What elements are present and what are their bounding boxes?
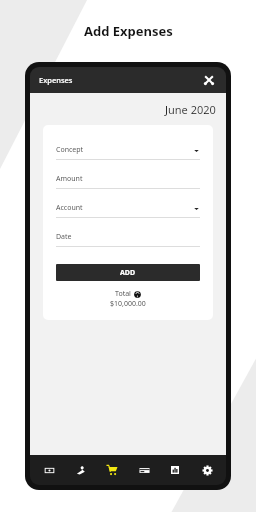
button[interactable]: Date [56, 228, 200, 257]
button[interactable]: Reports [163, 458, 187, 482]
staticText: ADD [120, 268, 136, 278]
button[interactable]: Concept [56, 141, 200, 170]
staticText: Expenses [39, 75, 73, 85]
button[interactable]: Cash [37, 458, 61, 482]
staticText: Amount [56, 174, 83, 184]
button[interactable]: Expenses [100, 458, 124, 482]
button[interactable]: Cards [132, 458, 156, 482]
button[interactable]: Income [69, 458, 93, 482]
button[interactable]: Tools [201, 72, 217, 88]
staticText: $10,000.00 [110, 299, 146, 309]
staticText: Date [56, 232, 72, 242]
staticText: June 2020 [165, 102, 216, 117]
button[interactable]: Help [133, 290, 141, 298]
button[interactable]: ADD [56, 264, 200, 281]
button[interactable]: Account [56, 199, 200, 228]
staticText: Add Expenses [84, 22, 173, 40]
button[interactable]: Settings [195, 458, 219, 482]
staticText: Concept [56, 145, 84, 155]
staticText: Total [115, 289, 133, 299]
staticText: Account [56, 203, 83, 213]
button[interactable]: Amount [56, 170, 200, 199]
